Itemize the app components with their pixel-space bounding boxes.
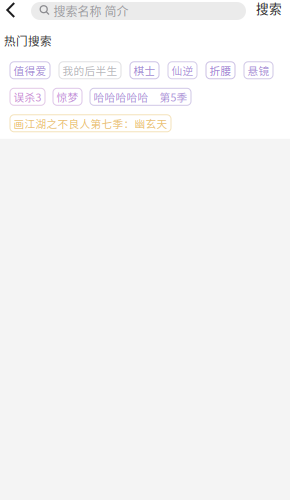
button[interactable]: 悬镜 bbox=[244, 62, 273, 79]
staticText: 值得爱 bbox=[13, 63, 46, 78]
staticText: 我的后半生 bbox=[62, 63, 117, 78]
button[interactable]: Back bbox=[6, 0, 31, 22]
button[interactable]: 搜索 bbox=[246, 0, 289, 22]
button[interactable]: 仙逆 bbox=[168, 62, 197, 79]
button[interactable]: 我的后半生 bbox=[59, 62, 121, 79]
staticText: 悬镜 bbox=[247, 63, 269, 78]
button[interactable]: 画江湖之不良人第七季：幽玄天 bbox=[10, 115, 171, 132]
staticText: 哈哈哈哈哈 第5季 bbox=[93, 89, 187, 104]
staticText: 画江湖之不良人第七季：幽玄天 bbox=[13, 116, 167, 131]
staticText: 误杀3 bbox=[13, 89, 41, 104]
button[interactable]: 折腰 bbox=[206, 62, 235, 79]
button[interactable]: 惊梦 bbox=[53, 88, 82, 105]
staticText: 仙逆 bbox=[171, 63, 193, 78]
staticText: 棋士 bbox=[133, 63, 155, 78]
button[interactable]: 棋士 bbox=[130, 62, 159, 79]
staticText: 搜索名称 简介 bbox=[53, 2, 128, 20]
staticText: 折腰 bbox=[209, 63, 231, 78]
button[interactable]: 误杀3 bbox=[10, 88, 45, 105]
staticText: 搜索 bbox=[256, 0, 282, 17]
staticText: 惊梦 bbox=[56, 89, 78, 104]
staticText: 热门搜索 bbox=[4, 32, 52, 49]
button[interactable]: 哈哈哈哈哈 第5季 bbox=[90, 88, 191, 105]
button[interactable]: 值得爱 bbox=[10, 62, 50, 79]
